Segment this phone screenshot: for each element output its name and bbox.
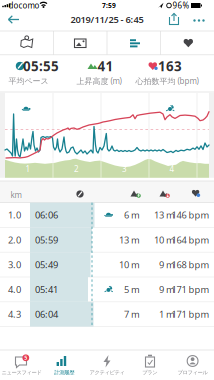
button[interactable]: More <box>188 8 210 30</box>
staticText: 2019/11/25 - 6:45 <box>70 13 143 26</box>
button[interactable]: Photos <box>53 31 107 55</box>
staticText: 171 bpm <box>171 283 209 296</box>
staticText: 2 <box>74 164 79 174</box>
staticText: 1.0 <box>8 209 21 221</box>
staticText: 計測履歴 <box>54 369 74 376</box>
button[interactable]: Back <box>0 8 26 30</box>
staticText: 平均ペース <box>8 76 48 86</box>
staticText: 10 m <box>154 234 175 246</box>
button[interactable]: Share <box>162 8 186 30</box>
button[interactable]: Heart rate <box>160 31 214 55</box>
staticText: 10 m <box>119 258 140 271</box>
staticText: 41 <box>97 57 113 75</box>
staticText: 7 m <box>124 308 140 320</box>
staticText: 168 bpm <box>171 258 209 271</box>
staticText: 6 m <box>124 209 140 221</box>
staticText: 1 m <box>159 308 175 320</box>
staticText: 心拍数平均 (bpm) <box>135 76 198 86</box>
staticText: 2.0 <box>8 234 21 246</box>
staticText: 13 m <box>119 234 140 246</box>
staticText: 4.0 <box>8 283 21 296</box>
staticText: 4.3 <box>8 308 21 320</box>
staticText: 3.0 <box>8 258 21 271</box>
staticText: 1 <box>25 164 30 174</box>
staticText: 06:06 <box>35 209 58 221</box>
staticText: プラン <box>142 369 157 376</box>
button[interactable]: News feed <box>0 350 43 380</box>
button[interactable]: Map <box>0 31 53 55</box>
staticText: 171 bpm <box>171 308 209 320</box>
staticText: 05:55 <box>23 57 59 75</box>
button[interactable]: Profile <box>171 350 214 380</box>
staticText: 9 m <box>159 258 175 271</box>
button[interactable]: Plan <box>128 350 171 380</box>
button[interactable]: Charts <box>107 31 160 55</box>
staticText: 7:59 <box>102 1 116 10</box>
staticText: 5 <box>24 354 27 361</box>
staticText: 5 m <box>124 283 140 296</box>
staticText: 4 <box>169 164 174 174</box>
staticText: 96% <box>172 0 189 11</box>
staticText: 164 bpm <box>171 234 209 246</box>
staticText: 上昇高度 (m) <box>76 76 121 86</box>
staticText: 9 m <box>159 283 175 296</box>
staticText: 3 <box>122 164 127 174</box>
staticText: 06:04 <box>35 308 58 320</box>
staticText: 13 m <box>154 209 175 221</box>
staticText: 163 <box>158 57 182 75</box>
staticText: 05:49 <box>35 258 58 271</box>
staticText: 05:59 <box>35 234 58 246</box>
staticText: プロフィール <box>178 369 208 376</box>
staticText: docomo <box>8 0 39 11</box>
staticText: アクティビティ <box>89 369 124 376</box>
button[interactable]: History <box>43 350 86 380</box>
staticText: 05:41 <box>35 283 58 296</box>
button[interactable]: Activity <box>86 350 128 380</box>
staticText: km <box>10 190 21 200</box>
staticText: ニュースフィード <box>1 369 41 376</box>
staticText: 146 bpm <box>171 209 209 221</box>
